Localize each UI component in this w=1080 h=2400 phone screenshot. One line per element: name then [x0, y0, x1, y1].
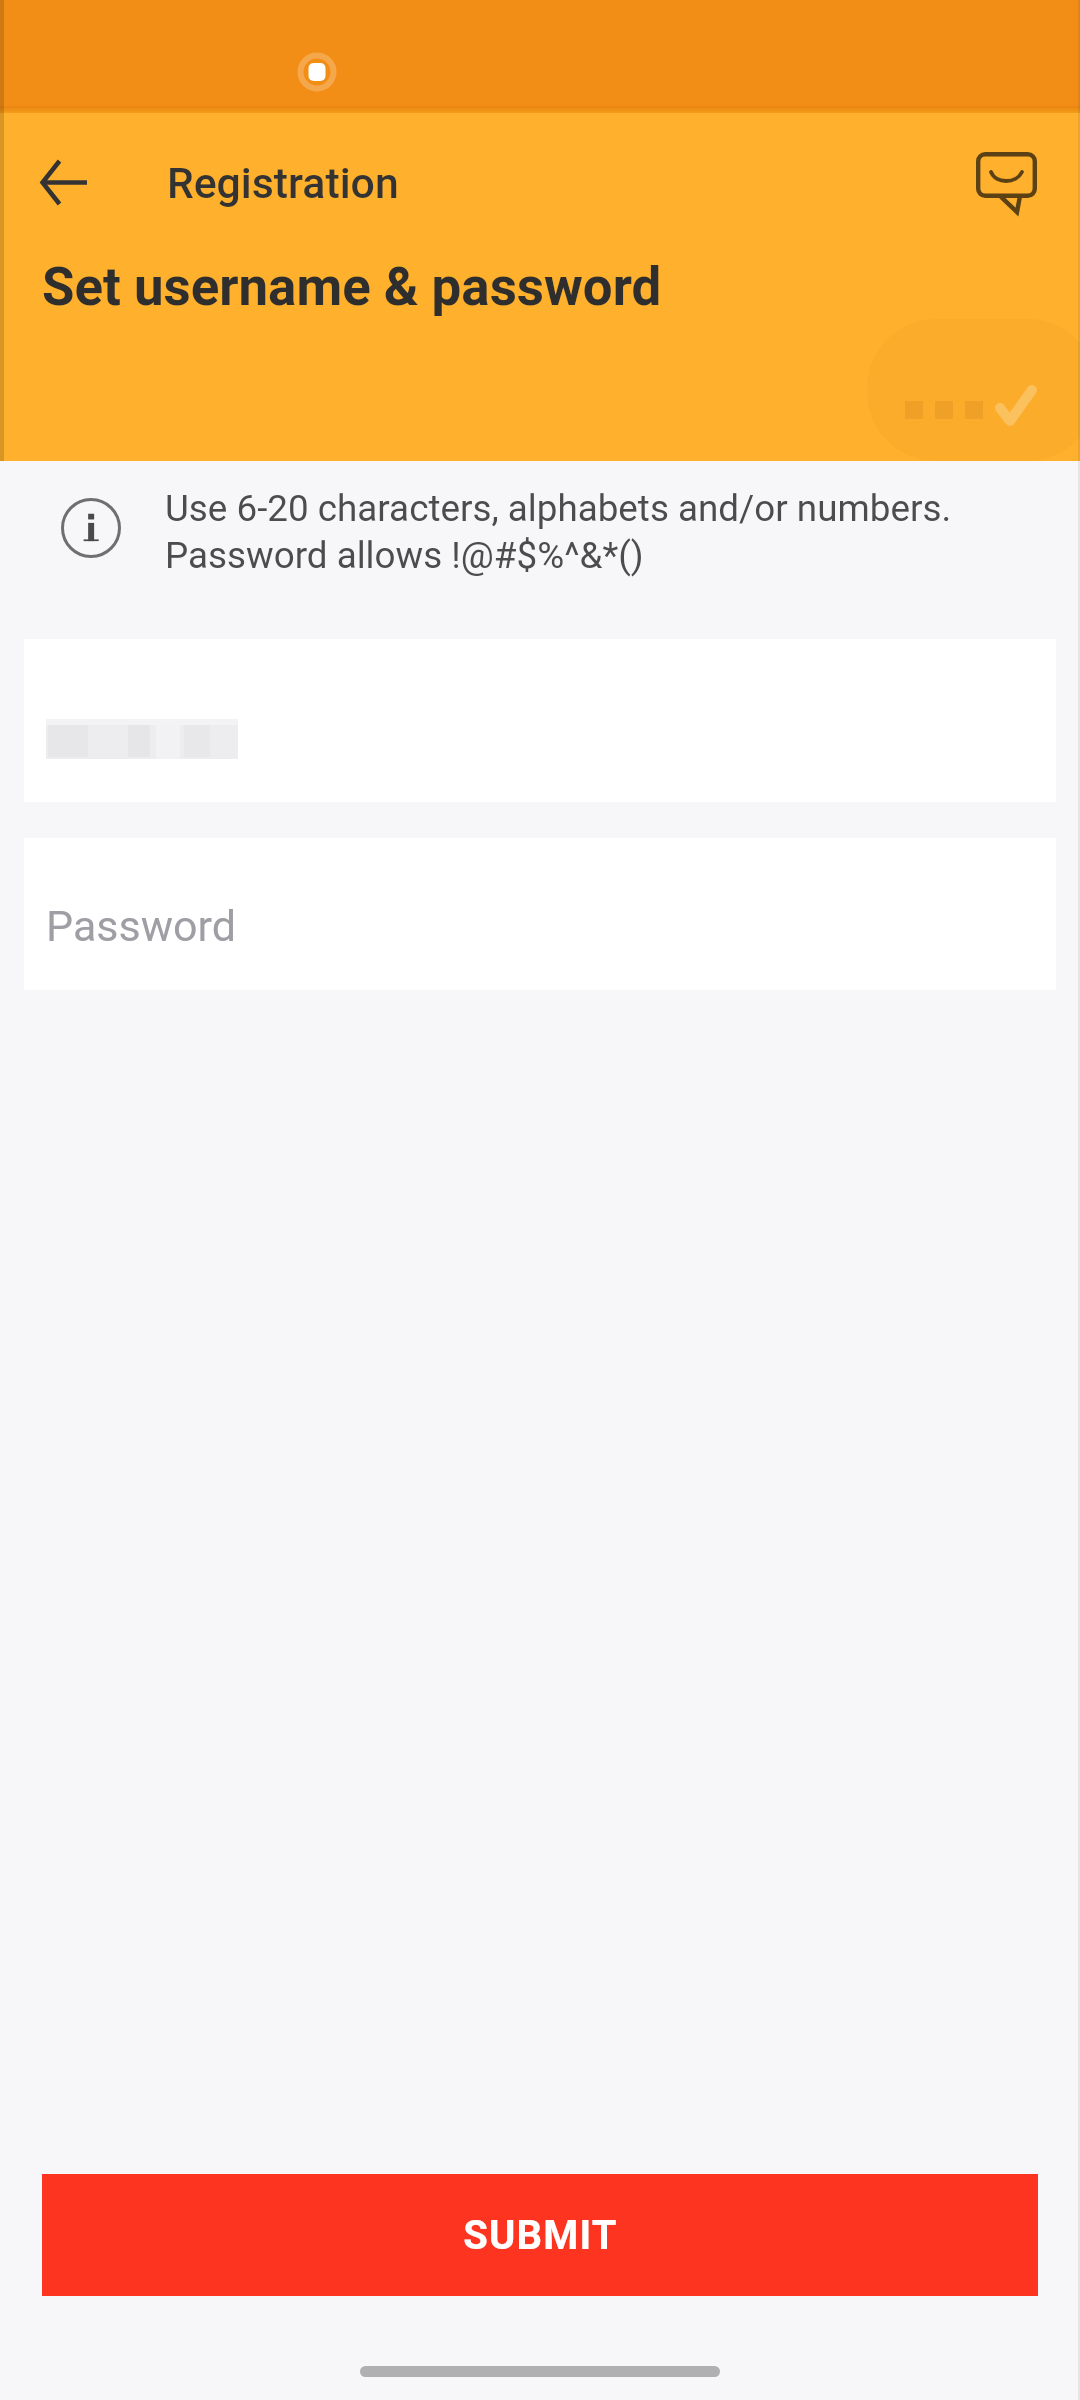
button[interactable]: Chat support	[958, 135, 1056, 231]
button[interactable]: Back	[16, 134, 114, 232]
button[interactable]: Password	[24, 838, 1056, 990]
button[interactable]	[24, 639, 1056, 802]
staticText: Password	[46, 901, 236, 951]
staticText: SUBMIT	[463, 2212, 618, 2259]
staticText: Registration	[167, 158, 399, 208]
staticText: Set username & password	[42, 256, 662, 318]
button[interactable]: SUBMIT	[42, 2174, 1038, 2296]
staticText: Use 6-20 characters, alphabets and/or nu…	[165, 487, 952, 577]
